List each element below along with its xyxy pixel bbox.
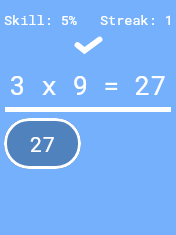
button[interactable]: Streak: 1 [100, 11, 173, 29]
staticText: Streak: 1 [100, 11, 173, 29]
button[interactable]: Skill: 5% [4, 11, 77, 29]
staticText: Skill: 5% [4, 11, 77, 29]
button[interactable]: 27 [4, 118, 81, 169]
staticText: 3 x 9 = 27 [10, 68, 167, 102]
other: Correct [74, 36, 103, 54]
staticText: 27 [30, 130, 56, 158]
